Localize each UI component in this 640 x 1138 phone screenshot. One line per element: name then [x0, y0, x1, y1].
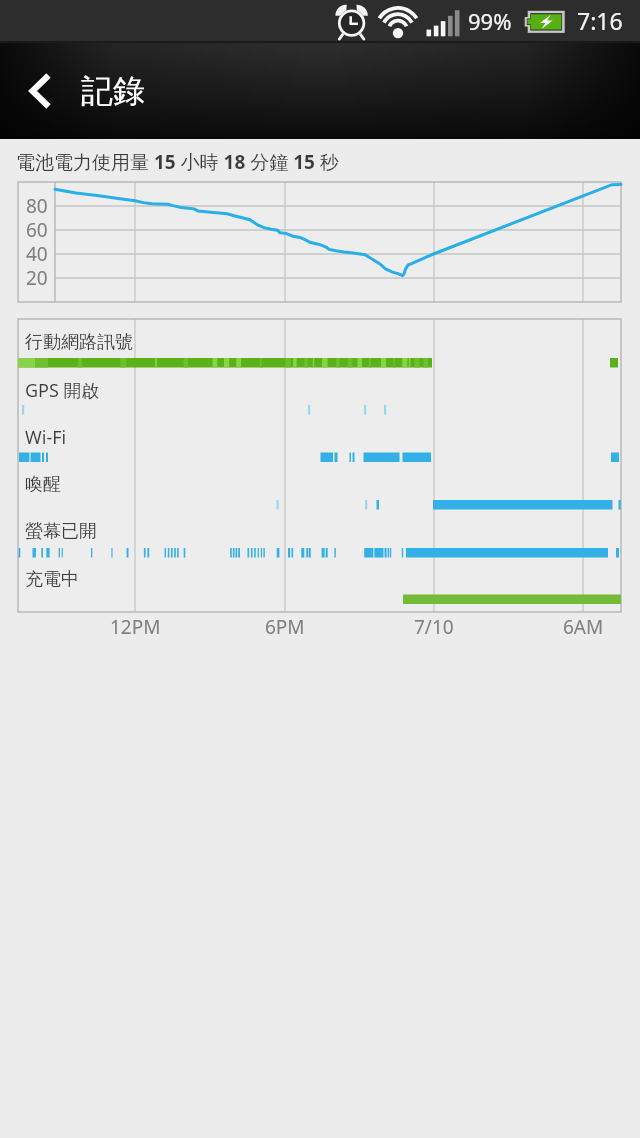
- staticText: 記錄: [81, 71, 145, 111]
- staticText: GPS 開啟: [25, 378, 100, 403]
- staticText: 40: [26, 241, 48, 267]
- staticText: 電池電力使用量 15 小時 18 分鐘 15 秒: [16, 149, 339, 175]
- staticText: 99%: [468, 6, 512, 36]
- staticText: 6PM: [265, 614, 305, 640]
- staticText: 12PM: [110, 614, 161, 640]
- staticText: 7/10: [414, 614, 454, 640]
- staticText: Wi-Fi: [25, 425, 67, 450]
- staticText: 20: [26, 265, 48, 291]
- staticText: 60: [26, 217, 48, 243]
- staticText: 6AM: [563, 614, 604, 640]
- button[interactable]: 記錄: [78, 43, 640, 139]
- staticText: 螢幕已開: [25, 520, 97, 543]
- staticText: 充電中: [25, 568, 79, 591]
- staticText: 80: [26, 193, 48, 219]
- button[interactable]: Back: [0, 43, 78, 139]
- staticText: 行動網路訊號: [25, 331, 133, 354]
- staticText: 7:16: [577, 5, 623, 36]
- staticText: 喚醒: [25, 473, 61, 496]
